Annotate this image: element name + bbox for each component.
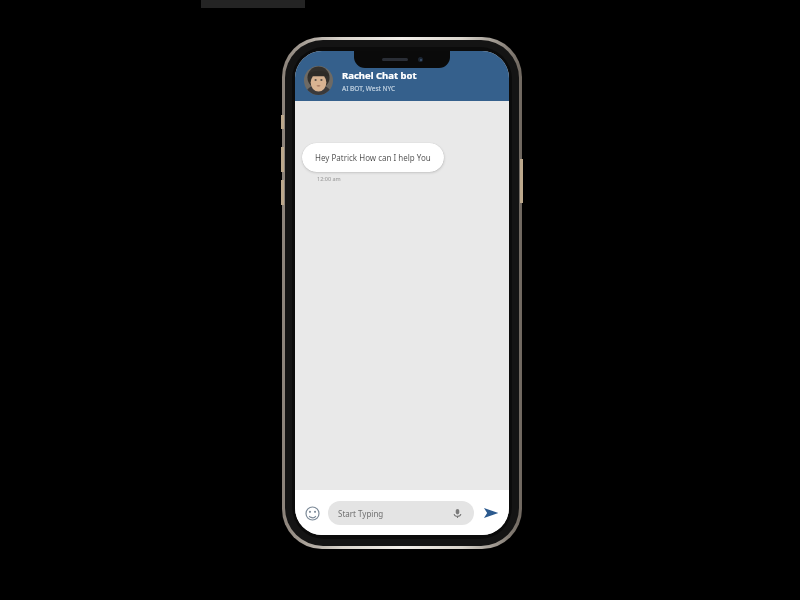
button[interactable]: Hey Patrick How can I help You — [302, 143, 444, 172]
button[interactable]: Voice input — [450, 506, 464, 520]
button[interactable]: Send — [481, 503, 501, 523]
staticText: Start Typing — [338, 508, 450, 519]
button[interactable]: Start Typing — [328, 501, 474, 525]
staticText: AI BOT, West NYC — [342, 84, 396, 93]
staticText: 12:00 am — [317, 175, 341, 182]
staticText: Hey Patrick How can I help You — [315, 152, 431, 163]
staticText: Rachel Chat bot — [342, 69, 417, 82]
button[interactable]: Emoji — [301, 502, 323, 524]
button[interactable]: Rachel Chat bot — [295, 51, 509, 101]
